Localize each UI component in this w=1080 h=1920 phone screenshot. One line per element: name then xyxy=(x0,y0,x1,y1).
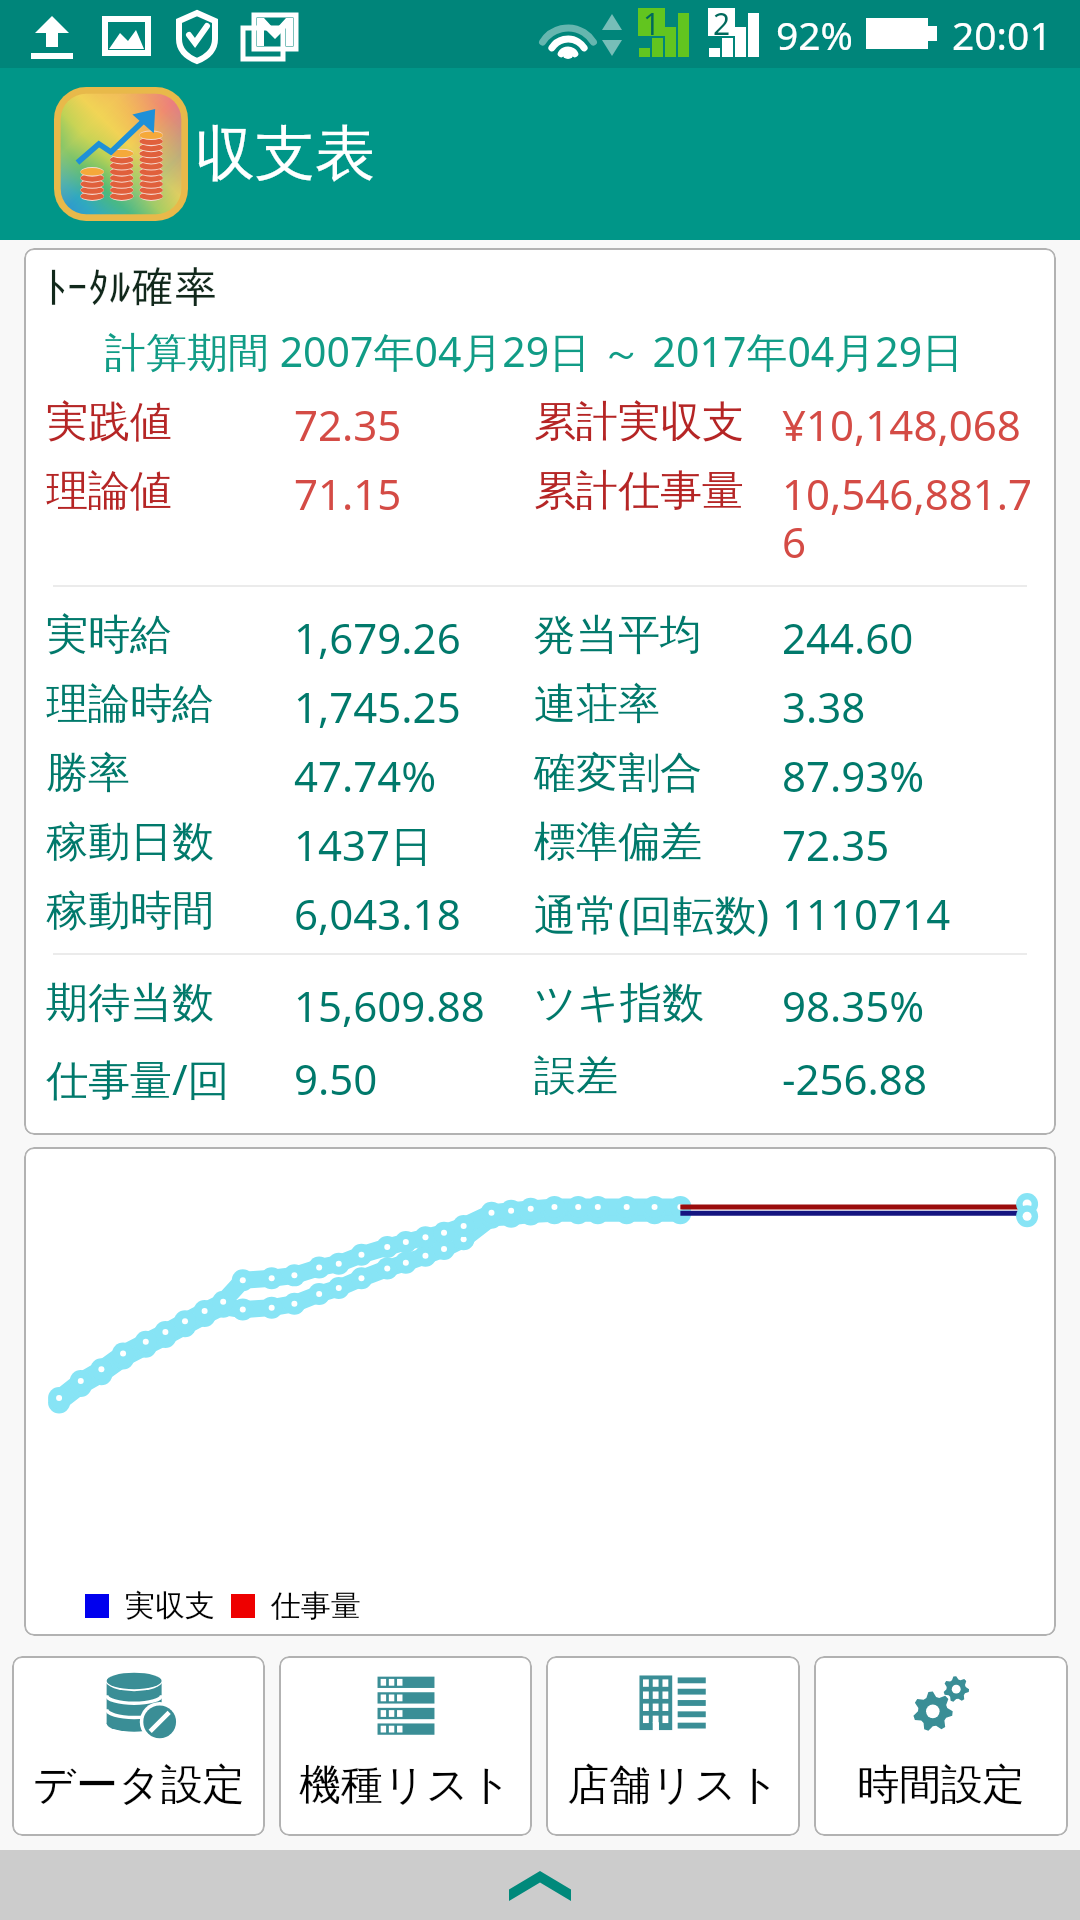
staticText: 仕事量/回 xyxy=(46,1050,230,1107)
staticText: 稼動時間 xyxy=(46,885,214,938)
staticText: 計算期間 2007年04月29日 ～ 2017年04月29日 xyxy=(105,323,964,379)
staticText: 仕事量 xyxy=(271,1587,361,1625)
staticText: 2 xyxy=(713,3,731,44)
staticText: 92% xyxy=(776,8,854,61)
staticText: 98.35% xyxy=(782,977,925,1034)
staticText: 47.74% xyxy=(294,747,437,804)
staticText: 71.15 xyxy=(294,465,402,522)
staticText: 87.93% xyxy=(782,747,925,804)
staticText: 1437日 xyxy=(294,816,433,873)
staticText: 店舗リスト xyxy=(567,1759,780,1812)
button[interactable]: Expand navigation xyxy=(509,1871,571,1901)
staticText: 累計仕事量 xyxy=(534,465,744,518)
staticText: 1110714 xyxy=(782,885,951,942)
staticText: データ設定 xyxy=(33,1759,245,1812)
staticText: 72.35 xyxy=(782,816,890,873)
staticText: 収支表 xyxy=(195,116,375,192)
staticText: -256.88 xyxy=(782,1050,927,1107)
staticText: 実践値 xyxy=(46,396,172,449)
staticText: ﾄｰﾀﾙ確率 xyxy=(45,265,217,308)
staticText: 3.38 xyxy=(782,678,866,735)
staticText: 実時給 xyxy=(46,609,172,662)
staticText: 6,043.18 xyxy=(294,885,461,942)
staticText: 9.50 xyxy=(294,1050,378,1107)
staticText: 誤差 xyxy=(534,1050,618,1103)
button[interactable]: 機種リスト xyxy=(279,1656,532,1836)
staticText: 発当平均 xyxy=(534,609,702,662)
staticText: 実収支 xyxy=(125,1587,215,1625)
staticText: 連荘率 xyxy=(534,678,660,731)
button[interactable]: データ設定 xyxy=(12,1656,265,1836)
staticText: 1,679.26 xyxy=(294,609,461,666)
staticText: ツキ指数 xyxy=(534,977,704,1030)
staticText: 20:01 xyxy=(952,8,1052,61)
staticText: 72.35 xyxy=(294,396,402,453)
staticText: 累計実収支 xyxy=(534,396,744,449)
staticText: 時間設定 xyxy=(857,1759,1025,1812)
staticText: 期待当数 xyxy=(46,977,214,1030)
button[interactable]: 店舗リスト xyxy=(546,1656,800,1836)
staticText: 確変割合 xyxy=(534,747,702,800)
staticText: 機種リスト xyxy=(299,1759,512,1812)
staticText: ¥10,148,068 xyxy=(782,396,1021,453)
staticText: 理論時給 xyxy=(46,678,214,731)
staticText: 1 xyxy=(643,3,661,44)
staticText: 1,745.25 xyxy=(294,678,461,735)
staticText: 標準偏差 xyxy=(534,816,702,869)
staticText: 15,609.88 xyxy=(294,977,485,1034)
staticText: 稼動日数 xyxy=(46,816,214,869)
staticText: 244.60 xyxy=(782,609,914,666)
staticText: 通常(回転数) xyxy=(534,885,770,942)
button[interactable]: 時間設定 xyxy=(814,1656,1068,1836)
staticText: 理論値 xyxy=(46,465,172,518)
staticText: 10,546,881.76 xyxy=(782,465,1032,571)
staticText: 勝率 xyxy=(46,747,130,800)
